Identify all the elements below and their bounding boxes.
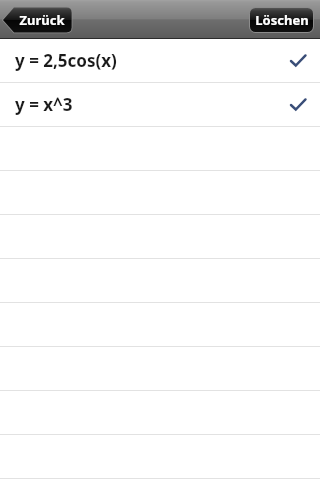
button[interactable]: Löschen — [249, 7, 314, 33]
button[interactable]: y = x^3 — [0, 83, 320, 126]
staticText: Löschen — [255, 11, 309, 29]
button[interactable]: Zurück — [3, 7, 72, 33]
staticText: y = x^3 — [15, 93, 73, 116]
staticText: Zurück — [19, 11, 65, 29]
button[interactable]: y = 2,5cos(x) — [0, 39, 320, 82]
staticText: y = 2,5cos(x) — [15, 49, 117, 72]
